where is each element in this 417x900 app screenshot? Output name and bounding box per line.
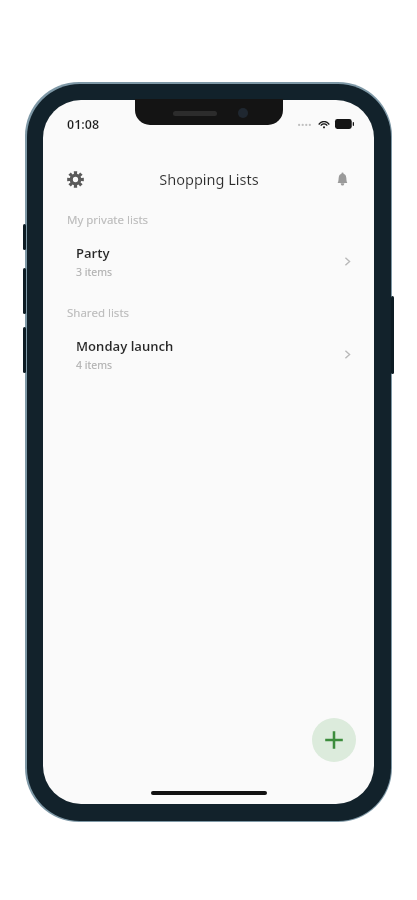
staticText: Shared lists: [67, 305, 130, 321]
button[interactable]: Party: [43, 241, 374, 281]
staticText: 01:08: [67, 116, 100, 133]
button[interactable]: Notifications: [324, 162, 360, 196]
staticText: My private lists: [67, 212, 149, 228]
button[interactable]: Settings: [57, 162, 93, 196]
button[interactable]: Monday launch: [43, 334, 374, 374]
staticText: Monday launch: [76, 337, 174, 355]
button[interactable]: Add list: [312, 718, 356, 762]
staticText: 3 items: [76, 265, 113, 279]
staticText: 4 items: [76, 358, 113, 372]
staticText: Shopping Lists: [159, 169, 259, 189]
staticText: Party: [76, 244, 110, 262]
